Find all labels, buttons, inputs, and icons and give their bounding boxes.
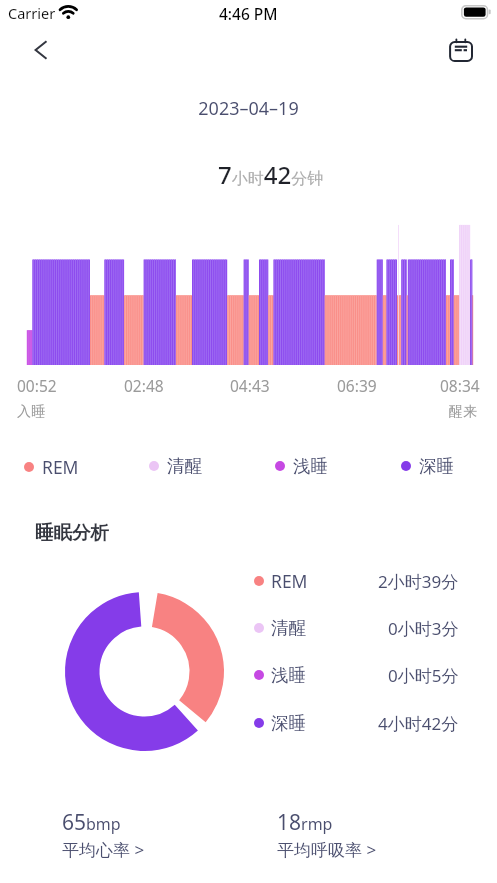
staticText: 2023–04–19 bbox=[0, 96, 497, 121]
staticText: 06:39 bbox=[337, 375, 377, 396]
staticText: REM bbox=[271, 569, 308, 593]
staticText: 4:46 PM bbox=[219, 3, 278, 24]
button[interactable]: 清醒 bbox=[149, 455, 202, 477]
staticText: REM bbox=[42, 455, 79, 479]
staticText: 04:43 bbox=[230, 375, 270, 396]
staticText: 深睡 bbox=[271, 712, 306, 734]
staticText: 0小时3分 bbox=[388, 617, 459, 640]
staticText: 7小时42分钟 bbox=[218, 158, 324, 191]
staticText: 18rmp bbox=[277, 808, 333, 837]
button[interactable]: 深睡 bbox=[254, 710, 459, 736]
staticText: 浅睡 bbox=[271, 664, 306, 686]
button[interactable]: 18rmp bbox=[277, 808, 381, 860]
button[interactable]: 深睡 bbox=[401, 455, 454, 477]
staticText: 0小时5分 bbox=[388, 664, 459, 687]
staticText: 醒来 bbox=[449, 403, 477, 421]
button[interactable]: 浅睡 bbox=[254, 662, 459, 688]
staticText: Carrier bbox=[8, 3, 56, 23]
staticText: 4小时42分 bbox=[378, 712, 459, 735]
staticText: 65bmp bbox=[62, 808, 121, 837]
staticText: 平均呼吸率 > bbox=[277, 838, 377, 861]
button[interactable]: Back bbox=[21, 30, 61, 70]
staticText: 清醒 bbox=[167, 455, 202, 477]
staticText: 睡眠分析 bbox=[35, 521, 109, 544]
button[interactable]: 65bmp bbox=[62, 808, 148, 860]
staticText: 08:34 bbox=[440, 375, 480, 396]
button[interactable]: REM bbox=[24, 455, 79, 479]
button[interactable]: Calendar bbox=[441, 31, 481, 71]
staticText: 浅睡 bbox=[293, 455, 328, 477]
button[interactable]: 清醒 bbox=[254, 615, 459, 641]
staticText: 2小时39分 bbox=[378, 570, 459, 593]
staticText: 入睡 bbox=[17, 403, 45, 421]
staticText: 平均心率 > bbox=[62, 838, 145, 861]
button[interactable]: 浅睡 bbox=[275, 455, 328, 477]
staticText: 02:48 bbox=[124, 375, 164, 396]
staticText: 00:52 bbox=[17, 375, 57, 396]
button[interactable]: REM bbox=[254, 568, 459, 594]
staticText: 深睡 bbox=[419, 455, 454, 477]
staticText: 清醒 bbox=[271, 617, 306, 639]
